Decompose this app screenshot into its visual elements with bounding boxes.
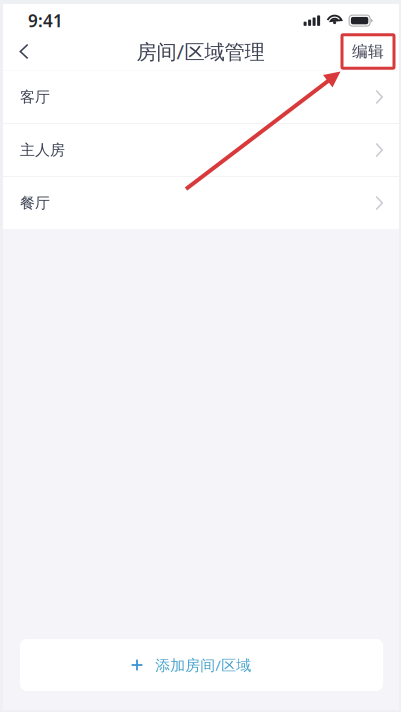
staticText: 房间/区域管理 [136, 38, 264, 65]
staticText: 主人房 [20, 141, 65, 159]
staticText: 编辑 [352, 42, 384, 61]
staticText: 添加房间/区域 [155, 655, 251, 675]
button[interactable]: 客厅 [0, 71, 401, 123]
staticText: 9:41 [28, 9, 63, 32]
staticText: 客厅 [20, 88, 50, 106]
button[interactable]: 添加房间/区域 [20, 639, 383, 691]
button[interactable]: 编辑 [342, 35, 394, 68]
staticText: 餐厅 [20, 194, 50, 212]
button[interactable]: 餐厅 [0, 177, 401, 229]
button[interactable]: 返回 [0, 33, 44, 70]
button[interactable]: 主人房 [0, 124, 401, 176]
